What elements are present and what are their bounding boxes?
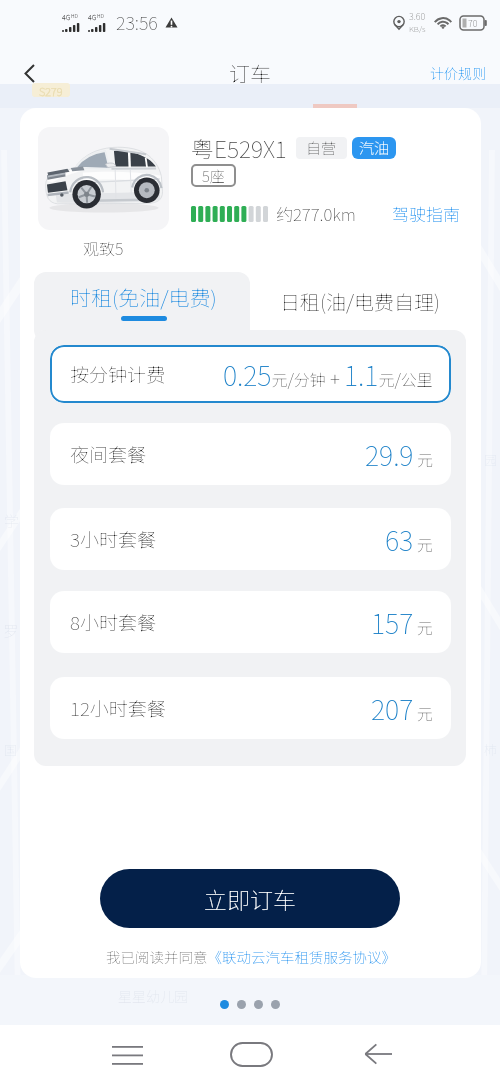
staticText: 星星幼儿园 — [118, 986, 188, 1006]
button[interactable]: 我已阅读并同意《联动云汽车租赁服务协议》 — [106, 946, 396, 967]
staticText: 207 元 — [371, 689, 433, 728]
button[interactable]: 驾驶指南 — [392, 201, 460, 226]
button[interactable]: 夜间套餐 — [50, 423, 451, 485]
staticText: 夜间套餐 — [70, 440, 147, 468]
staticText: 3小时套餐 — [70, 525, 156, 553]
button[interactable]: 日租(油/电费自理) — [253, 272, 466, 330]
staticText: 时租(免油/电费) — [70, 282, 217, 312]
button[interactable]: 12小时套餐 — [50, 677, 451, 739]
staticText: 观致5 — [83, 236, 124, 259]
staticText: 23:56 — [116, 9, 158, 35]
staticText: 驾驶指南 — [392, 201, 460, 226]
button[interactable]: Home — [223, 1026, 279, 1082]
staticText: 4G — [88, 12, 97, 22]
button[interactable]: 时租(免油/电费) — [34, 272, 253, 330]
staticText: 0.25元/分钟 + 1.1元/公里 — [223, 355, 433, 394]
staticText: 立即订车 — [204, 882, 296, 915]
button[interactable]: Back — [350, 1026, 406, 1082]
staticText: KB/s — [409, 23, 426, 35]
staticText: 计价规则 — [430, 63, 486, 83]
button[interactable]: Back — [12, 56, 46, 90]
staticText: 杮 — [484, 740, 498, 759]
button[interactable]: 按分钟计费 — [50, 345, 451, 403]
button[interactable]: 3小时套餐 — [50, 508, 451, 570]
staticText: 按分钟计费 — [70, 360, 166, 388]
button[interactable]: 立即订车 — [100, 869, 400, 928]
staticText: S279 — [39, 83, 63, 97]
staticText: 5座 — [202, 165, 225, 187]
staticText: 4G — [62, 12, 71, 22]
staticText: HD — [71, 12, 78, 19]
staticText: 园 — [484, 450, 498, 469]
staticText: 自营 — [306, 137, 337, 159]
staticText: 罗 — [3, 620, 19, 642]
staticText: 12小时套餐 — [70, 694, 166, 722]
staticText: 3.60 — [409, 10, 426, 23]
staticText: 粤E529X1 — [191, 131, 287, 164]
staticText: 70 — [468, 17, 478, 30]
button[interactable]: 8小时套餐 — [50, 591, 451, 653]
staticText: 8小时套餐 — [70, 608, 156, 636]
staticText: 订车 — [229, 58, 271, 88]
staticText: 学 — [4, 510, 20, 532]
staticText: 63 元 — [385, 520, 433, 559]
button[interactable]: Recent apps — [99, 1026, 155, 1082]
button[interactable]: 计价规则 — [416, 55, 500, 91]
staticText: 约277.0km — [276, 201, 356, 226]
staticText: 日租(油/电费自理) — [280, 287, 440, 316]
staticText: 157 元 — [371, 603, 433, 642]
staticText: 汽油 — [359, 137, 390, 159]
staticText: 国 — [4, 740, 18, 759]
staticText: 29.9 元 — [365, 435, 433, 474]
staticText: HD — [97, 12, 104, 19]
